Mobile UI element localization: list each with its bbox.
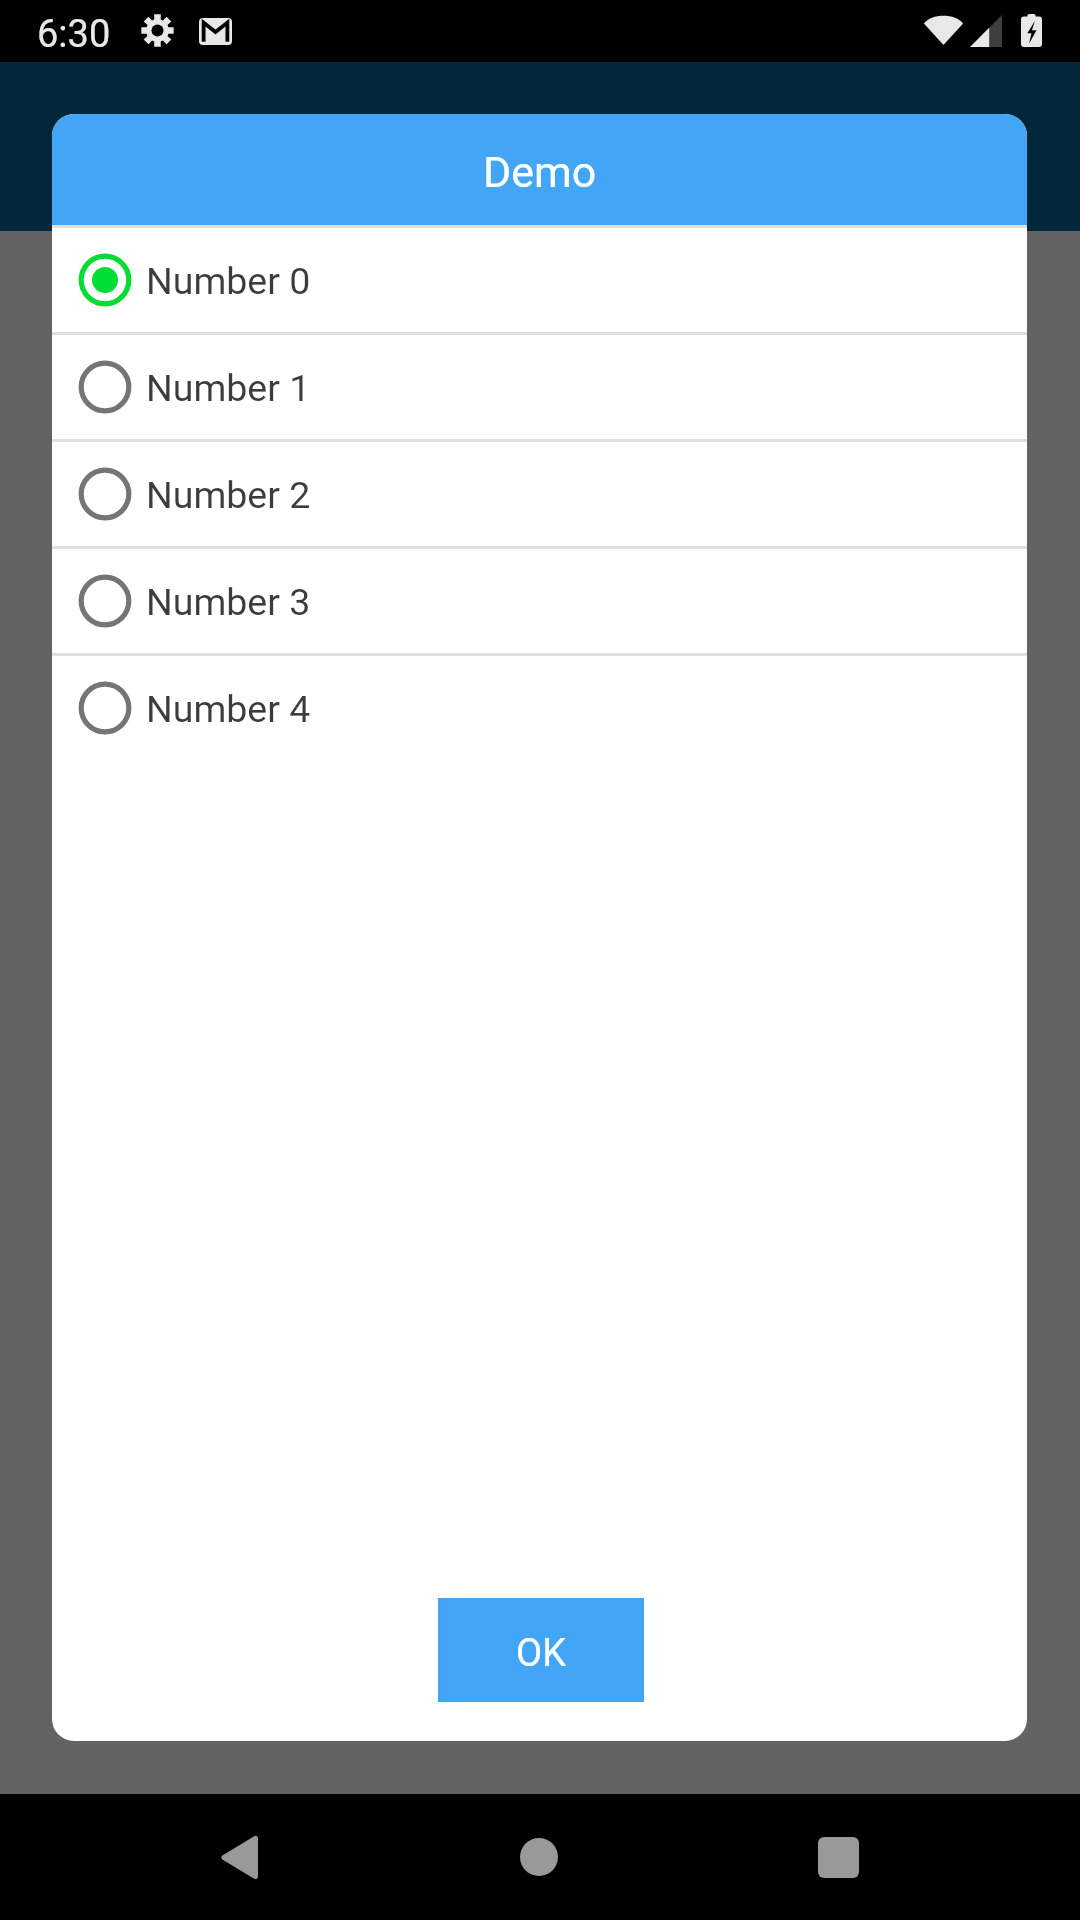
button[interactable]: Number 1 <box>52 335 1027 439</box>
staticText: Number 0 <box>146 259 311 303</box>
staticText: Number 2 <box>146 473 311 517</box>
button[interactable]: Recents <box>778 1794 898 1920</box>
staticText: Number 4 <box>146 687 311 731</box>
staticText: OK <box>516 1631 566 1676</box>
staticText: Demo <box>483 147 597 197</box>
button[interactable]: Number 3 <box>52 549 1027 653</box>
staticText: Number 1 <box>146 366 311 410</box>
staticText: Number 3 <box>146 580 311 624</box>
button[interactable]: Number 2 <box>52 442 1027 546</box>
staticText: 6:30 <box>37 12 111 57</box>
button[interactable]: Number 4 <box>52 656 1027 760</box>
button[interactable]: OK <box>438 1598 644 1702</box>
button[interactable]: Home <box>479 1794 599 1920</box>
button[interactable]: Number 0 <box>52 228 1027 332</box>
button[interactable]: Back <box>179 1794 299 1920</box>
